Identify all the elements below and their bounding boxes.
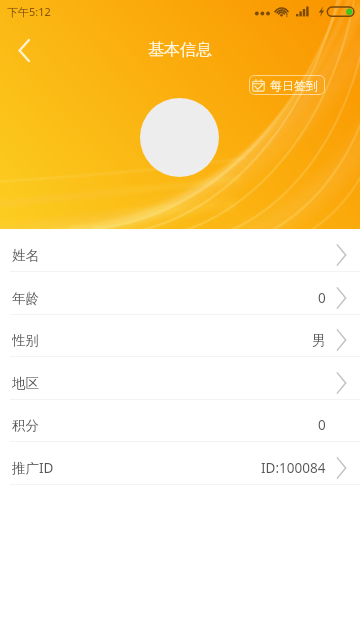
staticText: 基本信息 (148, 40, 212, 60)
staticText: 性别 (12, 332, 39, 349)
staticText: 地区 (12, 375, 39, 392)
staticText: 姓名 (12, 247, 39, 264)
button[interactable]: 每日签到 (249, 75, 325, 95)
button[interactable]: 性别 (0, 314, 360, 357)
button[interactable]: 姓名 (0, 229, 360, 272)
button[interactable]: Back (4, 30, 44, 70)
staticText: 男 (312, 332, 326, 349)
button[interactable]: 地区 (0, 357, 360, 400)
staticText: 下午5:12 (7, 4, 51, 19)
staticText: 0 (318, 416, 326, 434)
button[interactable]: 积分 (0, 399, 360, 442)
button[interactable]: Avatar (140, 98, 219, 177)
staticText: 0 (318, 289, 326, 307)
button[interactable]: 年龄 (0, 272, 360, 315)
staticText: 积分 (12, 417, 39, 434)
button[interactable]: 推广ID (0, 442, 360, 485)
staticText: 推广ID (12, 459, 54, 477)
staticText: 年龄 (12, 290, 39, 307)
staticText: 每日签到 (270, 78, 318, 93)
staticText: ID:100084 (261, 459, 326, 477)
